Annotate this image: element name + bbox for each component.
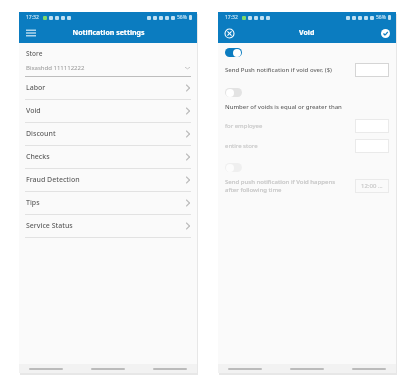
button[interactable]: Close [222, 26, 236, 40]
staticText: Service Status [26, 221, 186, 231]
staticText: 56% [376, 14, 386, 21]
staticText: Labor [26, 83, 186, 93]
button[interactable]: Value input [355, 119, 389, 133]
button[interactable]: Toggle off [225, 88, 242, 97]
staticText: 17:32 [225, 14, 238, 21]
staticText: Number of voids is equal or greater than [225, 103, 342, 111]
button[interactable]: Navigation button [228, 368, 262, 370]
staticText: 56% [177, 14, 187, 21]
staticText: Send Push notification if void over, ($) [225, 66, 355, 74]
staticText: Send push notification if Void happens a… [225, 178, 355, 194]
button[interactable]: Discount [19, 123, 197, 146]
button[interactable]: Confirm [378, 26, 392, 40]
staticText: Checks [26, 152, 186, 162]
staticText: Store [26, 49, 43, 58]
button[interactable]: Void [19, 100, 197, 123]
button[interactable]: Open navigation menu [23, 25, 39, 41]
button[interactable]: Toggle off [225, 163, 242, 172]
button[interactable]: Fraud Detection [19, 169, 197, 192]
staticText: Bixashdd 111112222 [26, 64, 185, 72]
staticText: 17:32 [26, 14, 39, 21]
staticText: for employee [225, 122, 355, 130]
staticText: Discount [26, 129, 186, 139]
staticText: Notification settings [72, 28, 145, 38]
staticText: Tips [26, 198, 186, 208]
staticText: 12:00 ... [361, 182, 383, 190]
button[interactable]: Service Status [19, 215, 197, 238]
button[interactable]: Bixashdd 111112222 [19, 64, 197, 72]
button[interactable]: Tips [19, 192, 197, 215]
staticText: entire store [225, 142, 355, 150]
button[interactable]: Navigation button [29, 368, 63, 370]
button[interactable]: 12:00 ... [355, 179, 389, 193]
button[interactable]: Value input [355, 63, 389, 77]
button[interactable]: Toggle on [225, 48, 242, 57]
staticText: Void [299, 28, 315, 38]
button[interactable]: Navigation button [290, 368, 324, 370]
staticText: Fraud Detection [26, 175, 186, 185]
button[interactable]: Navigation button [153, 368, 187, 370]
staticText: Void [26, 106, 186, 116]
button[interactable]: Labor [19, 77, 197, 100]
button[interactable]: Checks [19, 146, 197, 169]
button[interactable]: Navigation button [352, 368, 386, 370]
button[interactable]: Value input [355, 139, 389, 153]
button[interactable]: Navigation button [91, 368, 125, 370]
